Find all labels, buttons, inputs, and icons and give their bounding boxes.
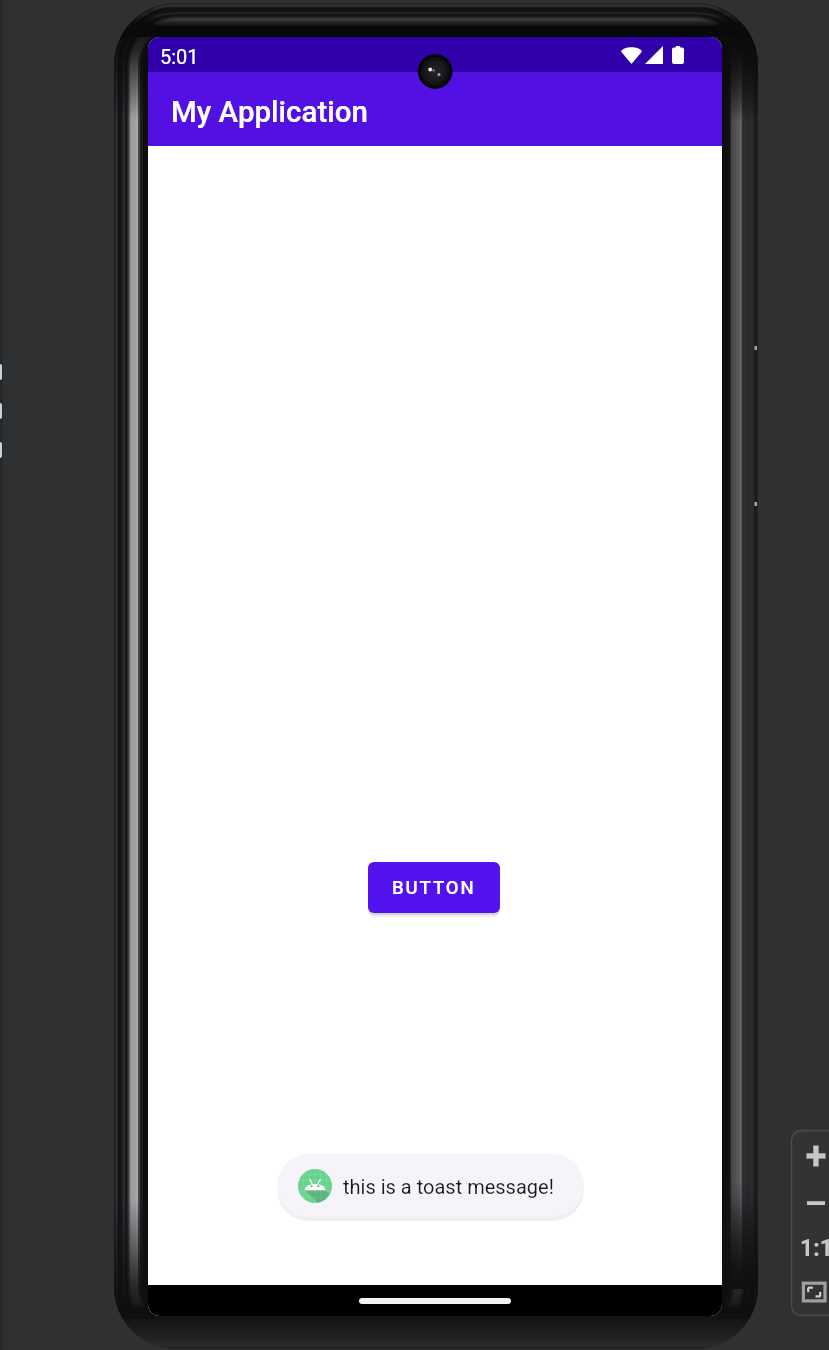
button[interactable]: BUTTON xyxy=(368,862,500,913)
button[interactable]: 1:1 xyxy=(796,1228,829,1268)
staticText: My Application xyxy=(171,95,368,130)
staticText: 1:1 xyxy=(800,1235,829,1262)
button[interactable]: Fit to screen xyxy=(796,1272,829,1312)
button[interactable]: this is a toast message! xyxy=(277,1154,584,1217)
staticText: BUTTON xyxy=(392,877,476,899)
button[interactable]: Zoom in xyxy=(796,1136,829,1176)
button[interactable]: Toolbar button xyxy=(0,364,2,380)
staticText: this is a toast message! xyxy=(343,1175,554,1198)
button[interactable]: Zoom out xyxy=(796,1183,829,1223)
button[interactable]: Toolbar button xyxy=(0,442,2,458)
staticText: 5:01 xyxy=(160,45,199,68)
button[interactable]: Toolbar button xyxy=(0,403,2,419)
